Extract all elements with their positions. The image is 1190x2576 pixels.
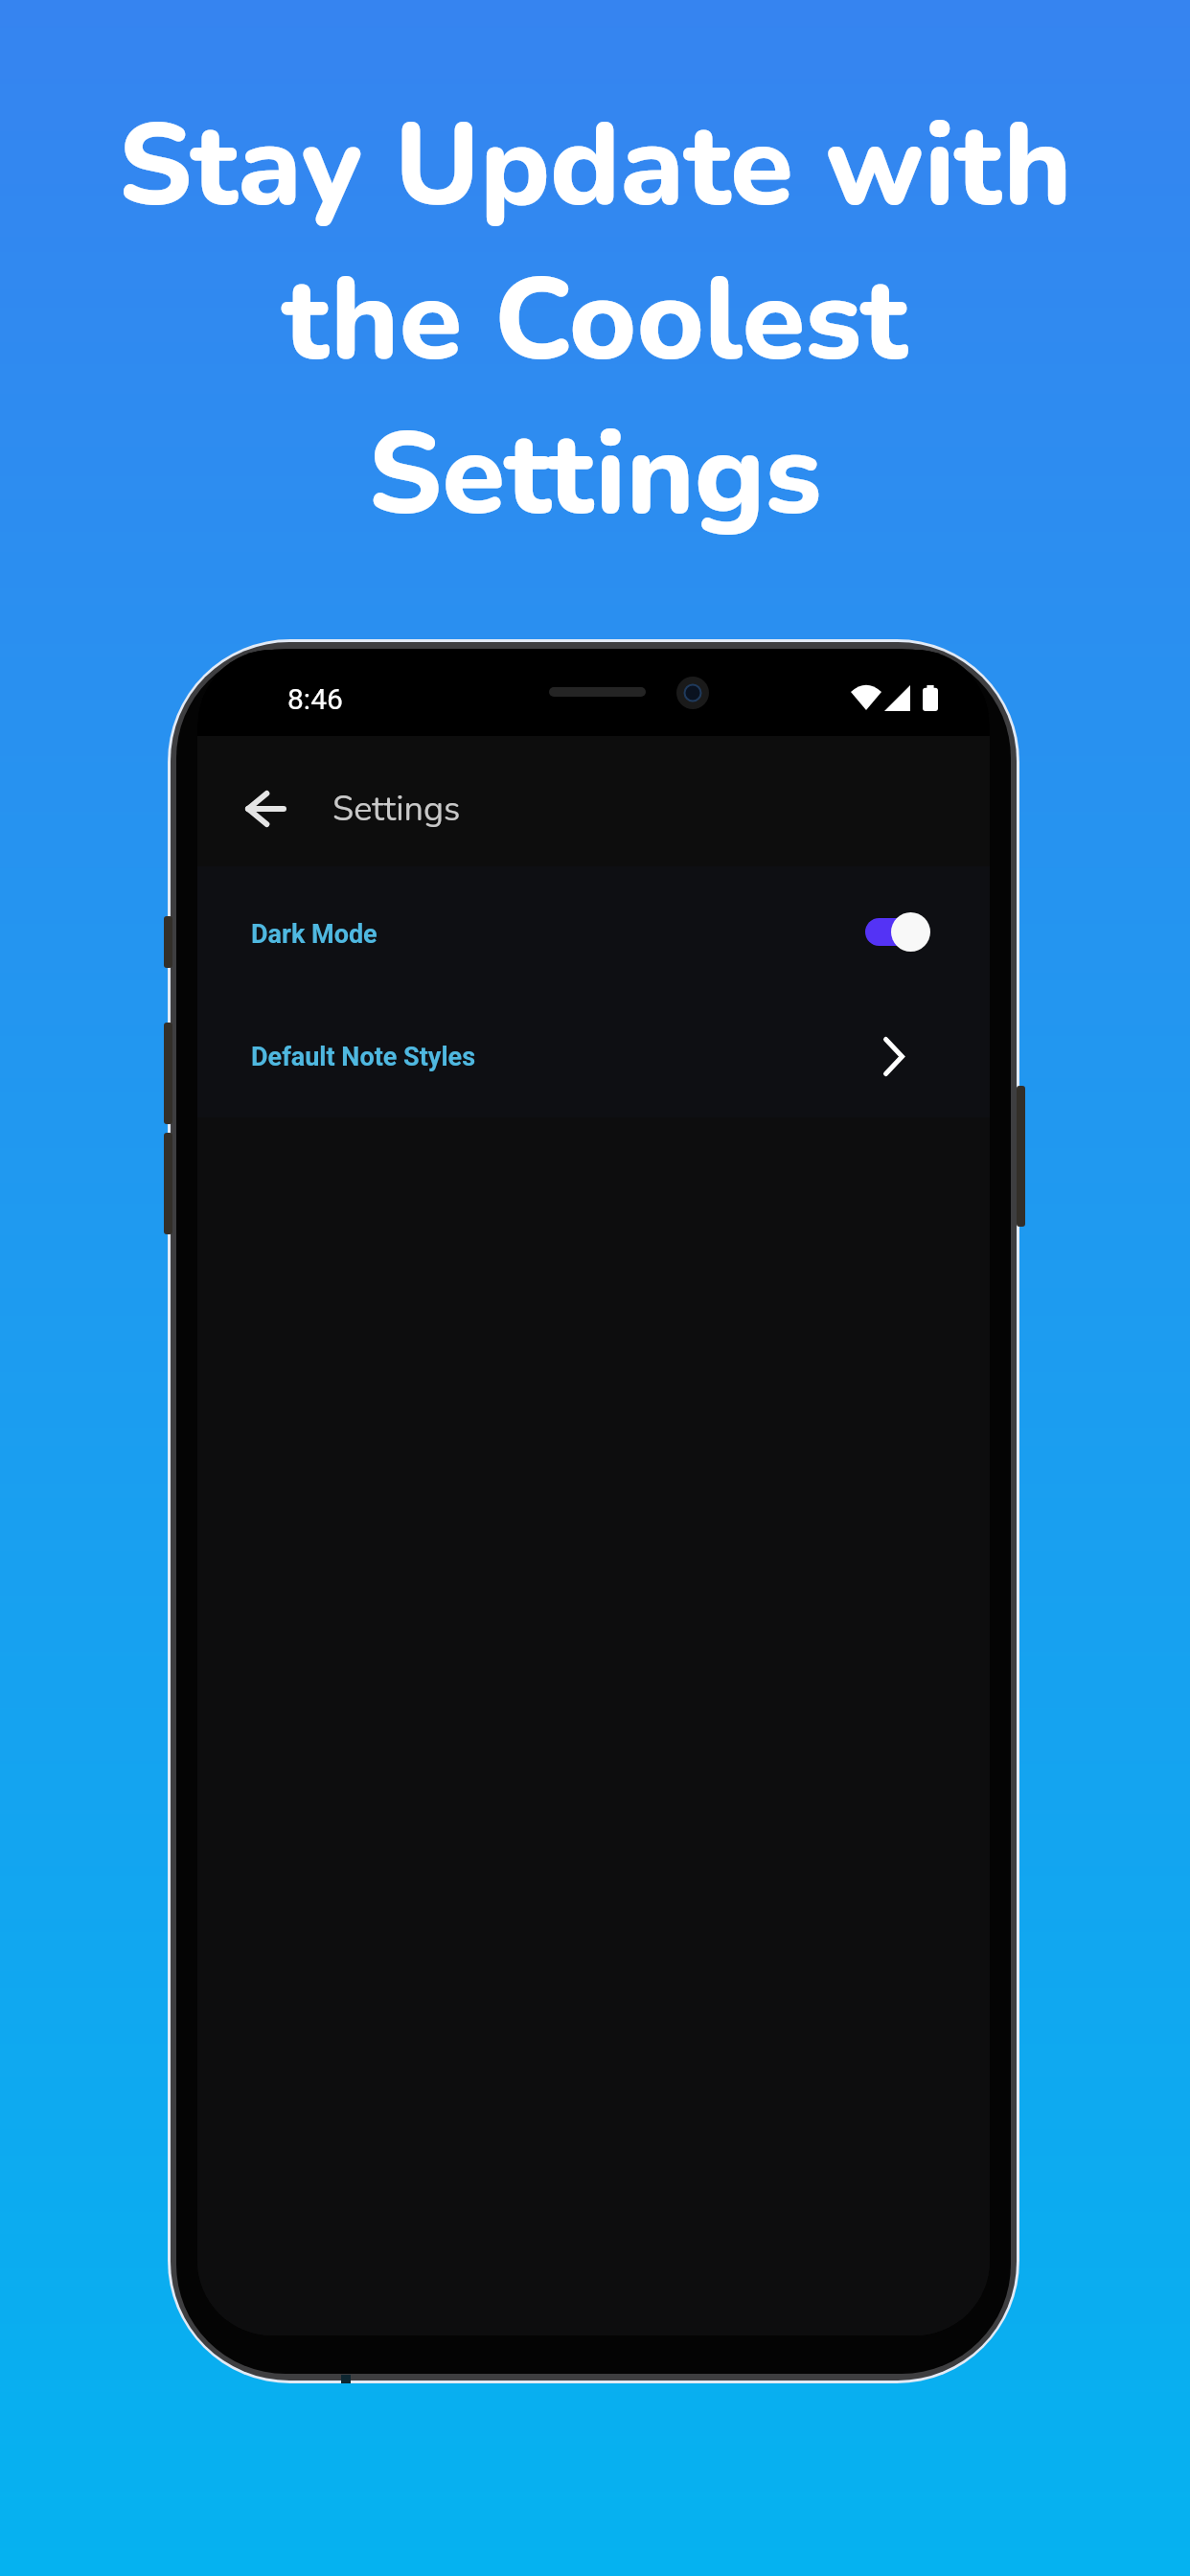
staticText: Settings <box>332 786 461 833</box>
staticText: Default Note Styles <box>251 1042 476 1072</box>
button[interactable]: Dark Mode <box>197 872 990 996</box>
button[interactable]: Default Note Styles <box>197 996 990 1117</box>
staticText: 8:46 <box>287 682 343 716</box>
button[interactable]: Back <box>231 774 300 843</box>
staticText: Dark Mode <box>251 919 378 950</box>
staticText: Stay Update with the Coolest Settings <box>0 88 1190 554</box>
